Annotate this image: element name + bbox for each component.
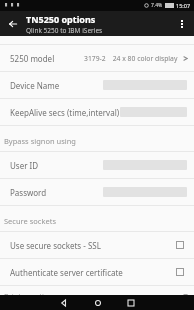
staticText: Qlink 5250 to IBM iSeries xyxy=(26,26,103,35)
button[interactable]: Home xyxy=(91,296,104,309)
button[interactable]: 5250 model xyxy=(0,45,194,71)
button[interactable]: Back xyxy=(2,13,23,34)
button[interactable]: User ID xyxy=(0,152,194,178)
button[interactable]: Device Name xyxy=(0,72,194,98)
staticText: 3179-2 24 x 80 color display xyxy=(84,54,178,63)
staticText: 7.4% xyxy=(151,2,163,9)
staticText: Device Name xyxy=(10,80,60,91)
button[interactable]: More options xyxy=(171,13,192,34)
button[interactable]: Use secure sockets - SSL xyxy=(0,232,194,258)
staticText: KeepAlive secs (time,interval) xyxy=(10,107,120,118)
button[interactable]: Recents xyxy=(124,296,137,309)
button[interactable]: KeepAlive secs (time,interval) xyxy=(0,99,194,125)
staticText: Printer options xyxy=(4,291,57,295)
staticText: 5250 model xyxy=(10,53,55,64)
staticText: TN5250 options xyxy=(26,13,96,25)
staticText: Secure sockets xyxy=(4,216,56,226)
button[interactable]: Authenticate server certificate xyxy=(0,259,194,285)
staticText: Use secure sockets - SSL xyxy=(10,240,101,251)
staticText: Password xyxy=(10,187,47,198)
staticText: Bypass signon using xyxy=(4,136,76,146)
staticText: 15:07 xyxy=(176,2,191,9)
staticText: User ID xyxy=(10,160,39,171)
staticText: Authenticate server certificate xyxy=(10,267,123,278)
button[interactable]: Password xyxy=(0,179,194,205)
button[interactable]: Back xyxy=(57,296,70,309)
